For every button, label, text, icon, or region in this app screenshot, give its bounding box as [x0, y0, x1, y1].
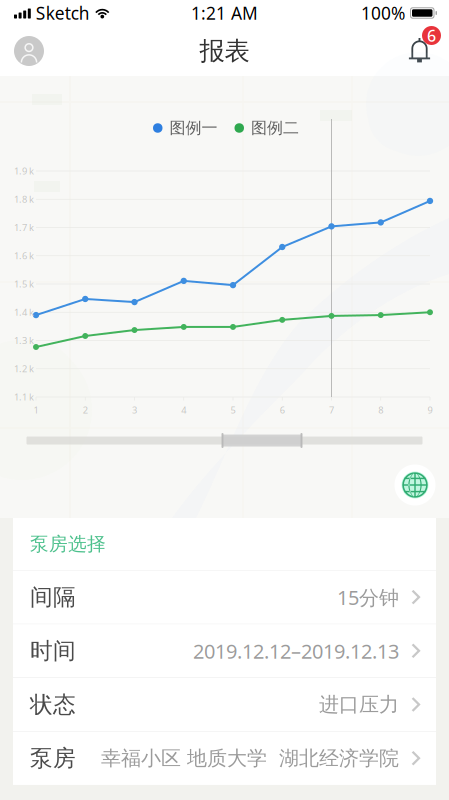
staticText: 1.1 k [14, 391, 34, 403]
staticText: 2 [83, 404, 88, 416]
staticText: 时间 [30, 637, 76, 665]
staticText: 100% [361, 1, 405, 24]
staticText: 状态 [30, 691, 76, 718]
button[interactable]: 泵房 [13, 732, 436, 785]
staticText: 2019.12.12–2019.12.13 [193, 638, 399, 664]
staticText: 1 [33, 404, 38, 416]
staticText: 间隔 [30, 583, 76, 611]
staticText: 5 [230, 404, 235, 416]
staticText: 8 [378, 404, 383, 416]
staticText: 幸福小区 地质大学 湖北经济学院 [101, 746, 399, 771]
staticText: 1.4 k [14, 306, 34, 318]
staticText: 9 [427, 404, 432, 416]
staticText: 7 [329, 404, 334, 416]
button[interactable]: Map layers [394, 464, 435, 505]
staticText: 1.2 k [14, 363, 34, 375]
staticText: 进口压力 [319, 692, 399, 717]
button[interactable]: 间隔 [13, 571, 436, 624]
button[interactable]: 状态 [13, 678, 436, 731]
staticText: 泵房选择 [30, 532, 106, 555]
staticText: 泵房 [30, 744, 76, 772]
staticText: 3 [132, 404, 137, 416]
staticText: 6 [280, 404, 285, 416]
staticText: 1.9 k [14, 165, 34, 177]
staticText: 图例二 [251, 118, 299, 138]
staticText: 4 [181, 404, 186, 416]
staticText: 1.7 k [14, 221, 34, 234]
staticText: 1.8 k [14, 193, 34, 205]
staticText: 1.5 k [14, 278, 34, 290]
staticText: 报表 [199, 35, 249, 66]
button[interactable]: 时间 [13, 624, 436, 677]
staticText: 图例一 [169, 118, 217, 138]
staticText: Sketch [36, 1, 90, 24]
button[interactable]: Profile [8, 26, 54, 76]
staticText: 15分钟 [337, 584, 399, 610]
staticText: 1.3 k [14, 334, 34, 347]
button[interactable]: Notifications [404, 26, 441, 76]
staticText: 1.6 k [14, 250, 34, 262]
staticText: 1:21 AM [191, 1, 258, 24]
staticText: 6 [427, 25, 436, 46]
